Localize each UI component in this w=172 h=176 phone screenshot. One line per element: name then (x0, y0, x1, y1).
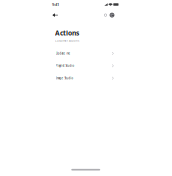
staticText: Playlist Studio (56, 64, 75, 67)
button[interactable]: Info (102, 12, 108, 19)
button[interactable]: Image Studio (56, 72, 119, 84)
button[interactable]: Account (108, 12, 115, 19)
staticText: Customer Actions (55, 39, 79, 43)
button[interactable]: Update me (56, 47, 119, 60)
staticText: Update me (56, 52, 71, 55)
staticText: Image Studio (56, 76, 74, 80)
button[interactable]: Back (52, 12, 60, 19)
button[interactable]: Playlist Studio (56, 60, 119, 72)
staticText: 9:41 (52, 2, 59, 7)
staticText: Actions (55, 28, 79, 37)
